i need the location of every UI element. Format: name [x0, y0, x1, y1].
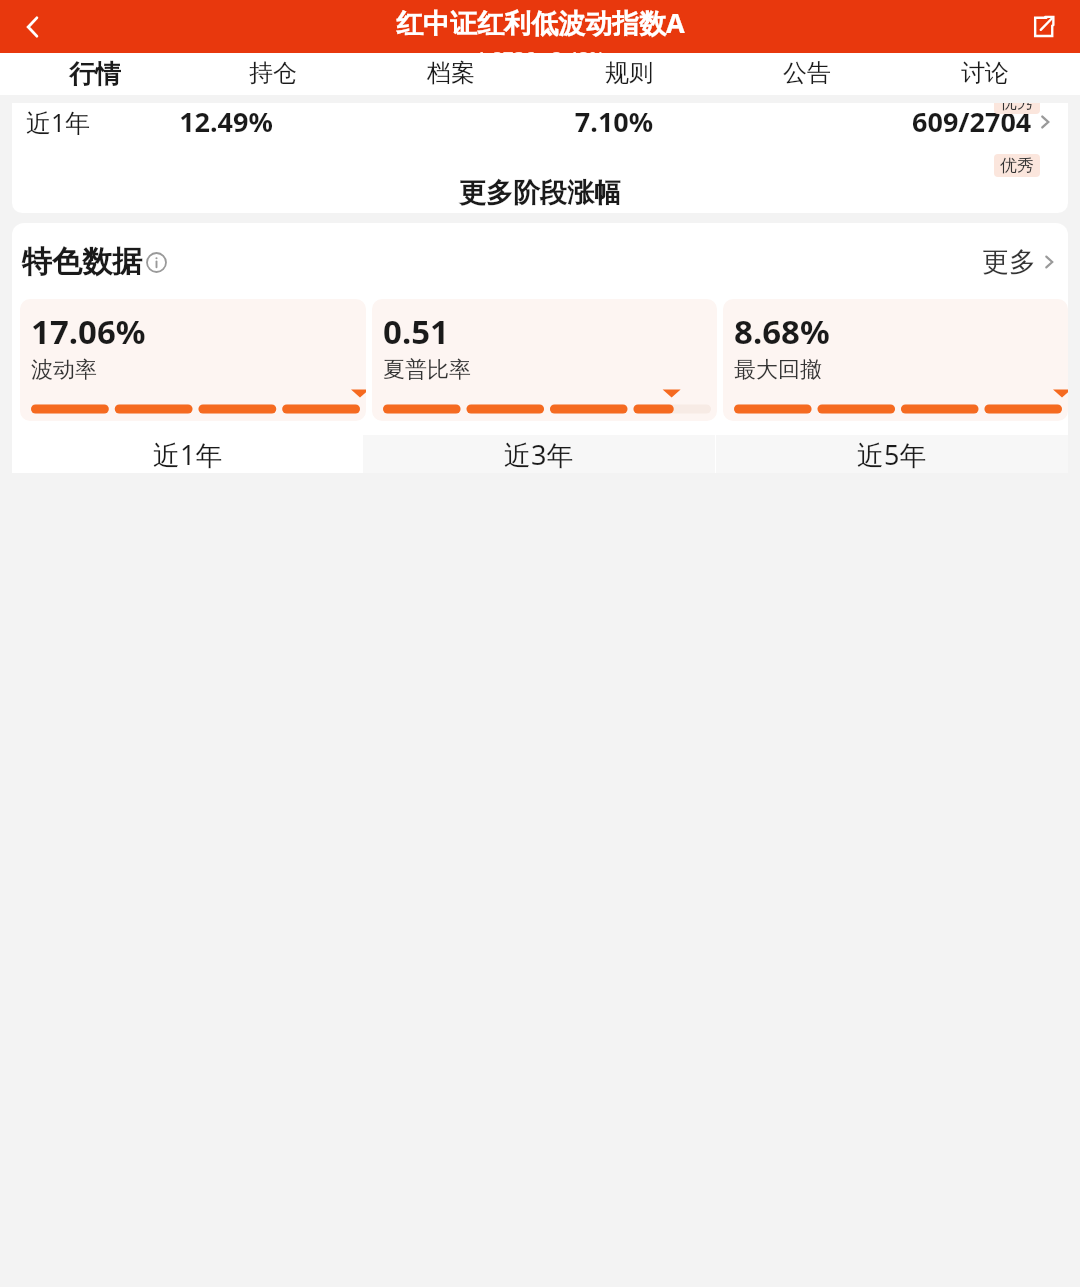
- button[interactable]: Info: [146, 252, 167, 273]
- staticText: 行情: [69, 58, 121, 91]
- staticText: 近3年: [504, 436, 574, 473]
- button[interactable]: 行情: [6, 53, 184, 95]
- staticText: 规则: [605, 58, 653, 88]
- button[interactable]: 近1年: [12, 435, 363, 473]
- button[interactable]: 0.51: [372, 299, 717, 421]
- staticText: 1.2736 +2.48%: [476, 46, 605, 53]
- staticText: 近1年: [153, 436, 223, 473]
- button[interactable]: 档案: [362, 53, 540, 95]
- button[interactable]: 持仓: [184, 53, 362, 95]
- button[interactable]: 讨论: [896, 53, 1074, 95]
- staticText: 17.06%: [31, 309, 146, 354]
- staticText: 8.68%: [734, 309, 830, 354]
- button[interactable]: 近1年: [12, 103, 1068, 161]
- staticText: 12.49%: [136, 103, 316, 140]
- button[interactable]: 公告: [718, 53, 896, 95]
- staticText: 档案: [427, 58, 475, 88]
- staticText: 波动率: [31, 356, 97, 384]
- staticText: 7.10%: [316, 103, 912, 140]
- staticText: 夏普比率: [383, 356, 471, 384]
- staticText: 更多: [982, 245, 1036, 279]
- staticText: 优秀: [1000, 155, 1034, 176]
- button[interactable]: Back: [10, 4, 56, 50]
- button[interactable]: 规则: [540, 53, 718, 95]
- staticText: 持仓: [249, 58, 297, 88]
- staticText: 红中证红利低波动指数A: [396, 4, 685, 41]
- button[interactable]: Share: [1020, 4, 1066, 50]
- button[interactable]: 近3年: [363, 435, 715, 473]
- button[interactable]: 8.68%: [723, 299, 1068, 421]
- button[interactable]: 近5年: [716, 435, 1068, 473]
- staticText: 近5年: [857, 436, 927, 473]
- staticText: 最大回撤: [734, 356, 822, 384]
- staticText: 609/2704: [912, 103, 1032, 140]
- staticText: 讨论: [961, 58, 1009, 88]
- staticText: 更多阶段涨幅: [459, 176, 621, 210]
- staticText: 特色数据: [22, 243, 142, 281]
- button[interactable]: 更多: [982, 245, 1058, 279]
- button[interactable]: 17.06%: [20, 299, 366, 421]
- staticText: 0.51: [383, 309, 449, 354]
- staticText: 优秀: [1000, 103, 1034, 113]
- staticText: 近1年: [26, 105, 136, 139]
- staticText: 公告: [783, 58, 831, 88]
- button[interactable]: 更多阶段涨幅: [12, 173, 1068, 213]
